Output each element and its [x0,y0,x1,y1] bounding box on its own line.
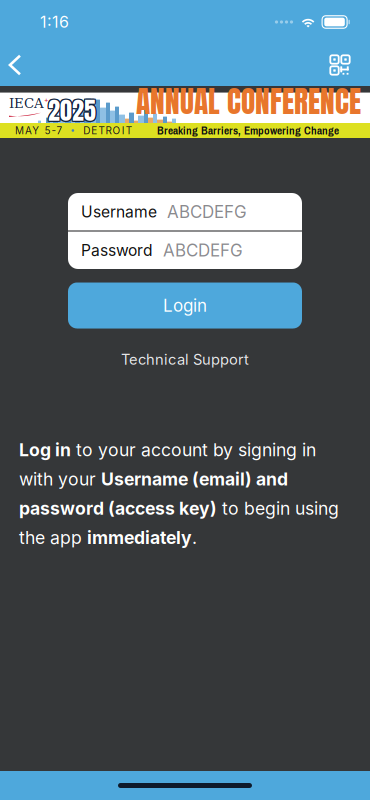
staticText: MAY 5-7 [15,124,63,137]
staticText: DETROIT [83,124,132,137]
staticText: IECA [9,96,44,111]
staticText: Username [81,202,157,221]
staticText: 2025 [47,92,95,128]
staticText: 2025 [48,92,96,128]
staticText: 2025 [48,91,96,127]
staticText: ANNUAL CONFERENCE [136,79,361,124]
staticText: 2025 [48,93,96,129]
staticText: Log in to your account by signing in wit… [19,439,339,548]
staticText: Breaking Barriers, Empowering Change [157,123,339,138]
staticText: Password [81,241,153,260]
staticText: 2025 [48,92,96,128]
button[interactable]: Scan QR code [320,44,360,86]
staticText: 2025 [49,92,97,128]
staticText: 1:16 [40,12,69,32]
staticText: 2025 [49,93,97,129]
staticText: Login [163,295,207,316]
staticText: + [44,96,48,104]
staticText: Technical Support [121,351,249,368]
staticText: 2025 [47,93,95,129]
staticText: 2025 [49,91,97,127]
button[interactable]: Back [0,44,33,86]
staticText: 2025 [47,91,95,127]
button[interactable]: Login [68,282,302,328]
button[interactable]: Technical Support [121,348,249,370]
staticText: ABCDEFG [163,240,243,260]
staticText: ABCDEFG [167,201,247,222]
